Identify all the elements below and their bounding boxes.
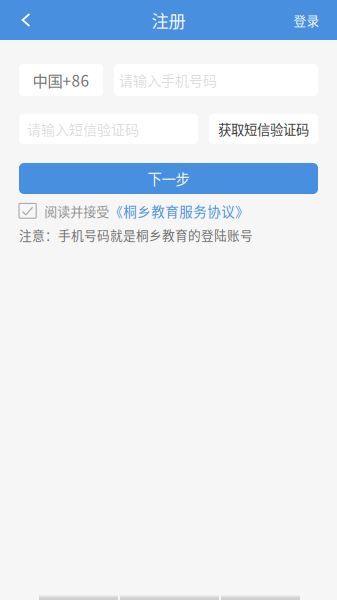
staticText: 《桐乡教育服务协议》 [109, 201, 249, 221]
staticText: 请输入短信验证码 [27, 119, 139, 139]
staticText: 下一步 [147, 168, 189, 189]
staticText: 获取短信验证码 [218, 119, 309, 139]
staticText: 登录 [293, 11, 319, 29]
button[interactable]: 获取短信验证码 [209, 114, 318, 144]
button[interactable]: 登录 [285, 0, 337, 40]
button[interactable]: 阅读并接受 [19, 201, 249, 221]
staticText: 请输入手机号码 [119, 70, 217, 90]
button[interactable]: 下一步 [19, 163, 318, 194]
button[interactable]: 返回 [0, 0, 52, 40]
button[interactable]: 中国+86 [19, 64, 103, 96]
staticText: 注册 [151, 7, 185, 33]
staticText: 阅读并接受 [44, 201, 109, 220]
staticText: 注意：手机号码就是桐乡教育的登陆账号 [19, 226, 253, 244]
staticText: 中国+86 [32, 69, 89, 91]
